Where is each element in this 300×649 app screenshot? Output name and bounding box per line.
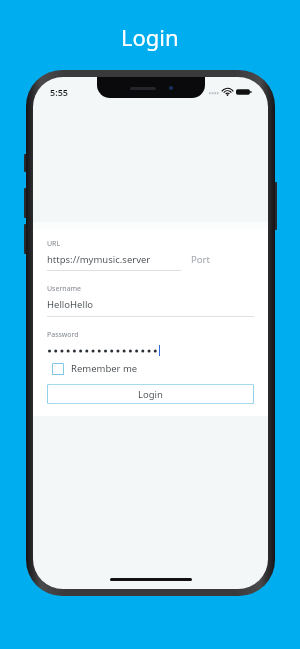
button[interactable]: Remember me <box>52 362 138 375</box>
staticText: 5:55 <box>50 86 68 98</box>
staticText: Username <box>47 284 82 294</box>
button[interactable]: Login <box>47 384 254 404</box>
staticText: URL <box>47 239 61 249</box>
staticText: Login <box>138 388 163 401</box>
staticText: https://mymusic.server <box>47 253 151 266</box>
staticText: Login <box>121 22 179 52</box>
staticText: HelloHello <box>47 298 94 311</box>
staticText: Remember me <box>71 362 138 375</box>
staticText: Port <box>191 253 210 266</box>
staticText: Password <box>47 330 79 340</box>
